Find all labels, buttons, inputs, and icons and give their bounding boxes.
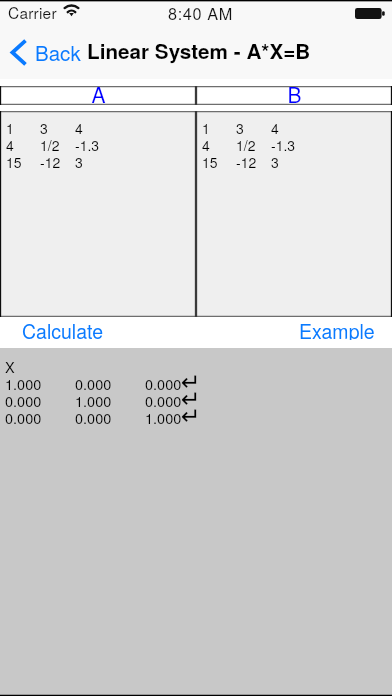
staticText: 3 xyxy=(40,118,48,135)
staticText: 1/2 xyxy=(40,135,60,152)
button[interactable]: 1 xyxy=(196,111,392,317)
button[interactable]: Example xyxy=(285,317,392,348)
other: Back xyxy=(10,40,26,65)
staticText: 4 xyxy=(6,135,14,152)
staticText: 1.000 xyxy=(5,373,42,390)
button[interactable]: Calculate xyxy=(0,317,117,348)
button[interactable]: B xyxy=(196,86,392,105)
staticText: 0.000 xyxy=(75,407,112,424)
staticText: ↵ xyxy=(181,368,201,395)
staticText: 8:40 AM xyxy=(168,1,233,24)
staticText: 15 xyxy=(6,152,22,169)
staticText: X xyxy=(5,356,15,373)
staticText: A xyxy=(91,79,106,109)
staticText: B xyxy=(287,79,302,109)
staticText: 1/2 xyxy=(236,135,256,152)
staticText: -1.3 xyxy=(75,135,100,152)
staticText: 1.000 xyxy=(75,390,112,407)
button[interactable]: Back xyxy=(0,34,87,71)
staticText: Calculate xyxy=(22,317,103,340)
button[interactable]: A xyxy=(0,86,196,105)
staticText: Carrier xyxy=(8,1,57,23)
staticText: Linear System - A*X=B xyxy=(87,36,311,66)
staticText: 1 xyxy=(6,118,14,135)
button[interactable]: 1 xyxy=(0,111,196,317)
staticText: Back xyxy=(35,37,81,66)
staticText: 4 xyxy=(202,135,210,152)
staticText: -12 xyxy=(40,152,61,169)
staticText: 3 xyxy=(236,118,244,135)
staticText: 0.000 xyxy=(145,390,182,407)
staticText: 15 xyxy=(202,152,218,169)
staticText: 4 xyxy=(271,118,279,135)
staticText: 1 xyxy=(202,118,210,135)
staticText: 0.000 xyxy=(5,407,42,424)
staticText: Example xyxy=(299,317,375,340)
staticText: 0.000 xyxy=(75,373,112,390)
staticText: ↵ xyxy=(181,385,201,412)
other: Battery full xyxy=(355,8,385,19)
staticText: 0.000 xyxy=(5,390,42,407)
staticText: 4 xyxy=(75,118,83,135)
staticText: 3 xyxy=(75,152,83,169)
other: Wi-Fi xyxy=(63,4,80,16)
staticText: 3 xyxy=(271,152,279,169)
staticText: -1.3 xyxy=(271,135,296,152)
staticText: 1.000 xyxy=(145,407,182,424)
staticText: -12 xyxy=(236,152,257,169)
staticText: ↵ xyxy=(181,402,201,429)
staticText: 0.000 xyxy=(145,373,182,390)
